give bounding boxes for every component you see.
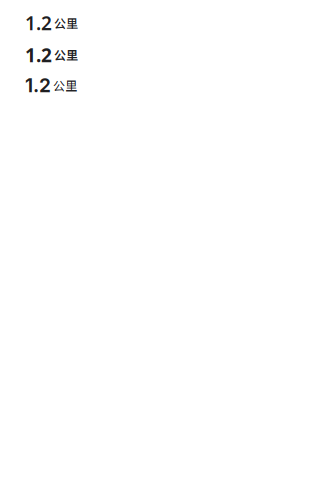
staticText: 公里 [54,46,78,63]
staticText: 1.2 [25,74,51,97]
staticText: 公里 [54,14,78,32]
staticText: 1.2 [25,42,52,68]
staticText: 公里 [53,77,77,94]
staticText: 1.2 [25,10,52,36]
